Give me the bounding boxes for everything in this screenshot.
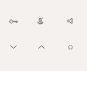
button[interactable]: Mute microphone bbox=[27, 9, 56, 33]
button[interactable]: Key bbox=[0, 9, 28, 33]
button[interactable]: Settings bbox=[56, 35, 85, 59]
button[interactable]: Volume bbox=[56, 9, 85, 33]
button[interactable]: Expand bbox=[0, 35, 28, 59]
button[interactable]: Collapse bbox=[27, 35, 56, 59]
